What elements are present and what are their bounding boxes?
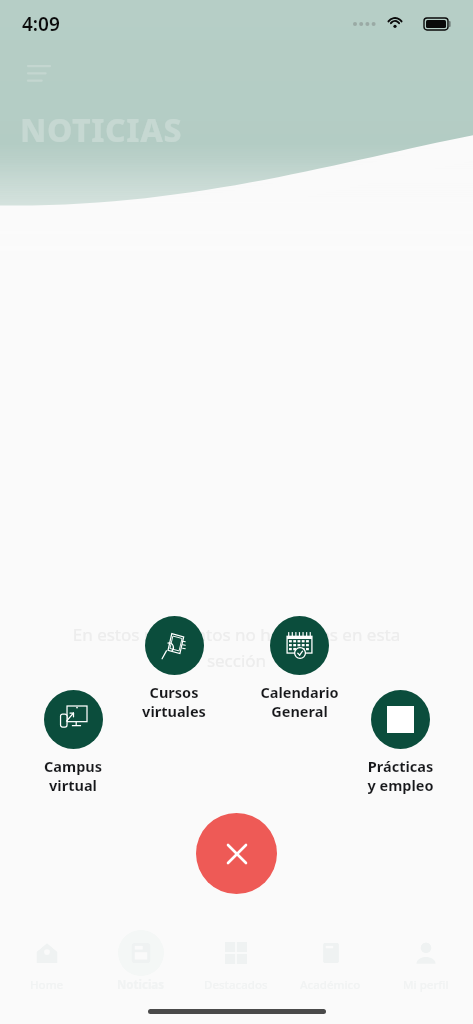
button[interactable]: Menu [18, 52, 60, 94]
staticText: 4:09 [22, 11, 60, 37]
staticText: Prácticas y empleo [367, 756, 434, 795]
staticText: Noticias [117, 977, 165, 993]
button[interactable]: Noticias [94, 922, 188, 1000]
button[interactable]: Calendario General [234, 616, 364, 721]
staticText: Académico [300, 977, 361, 993]
button[interactable]: Campus virtual [8, 690, 138, 795]
button[interactable]: Prácticas y empleo [335, 690, 465, 795]
staticText: En estos momentos no hay datos en esta s… [54, 623, 419, 672]
staticText: Mi perfil [403, 977, 449, 993]
button[interactable]: Cerrar menú [196, 813, 277, 894]
staticText: Home [30, 977, 64, 993]
staticText: Destacados [204, 977, 268, 993]
button[interactable]: Cursos virtuales [109, 616, 239, 721]
staticText: Cursos virtuales [142, 682, 206, 721]
staticText: Calendario General [260, 682, 339, 721]
staticText: NOTICIAS [20, 108, 183, 152]
staticText: Campus virtual [44, 756, 102, 795]
